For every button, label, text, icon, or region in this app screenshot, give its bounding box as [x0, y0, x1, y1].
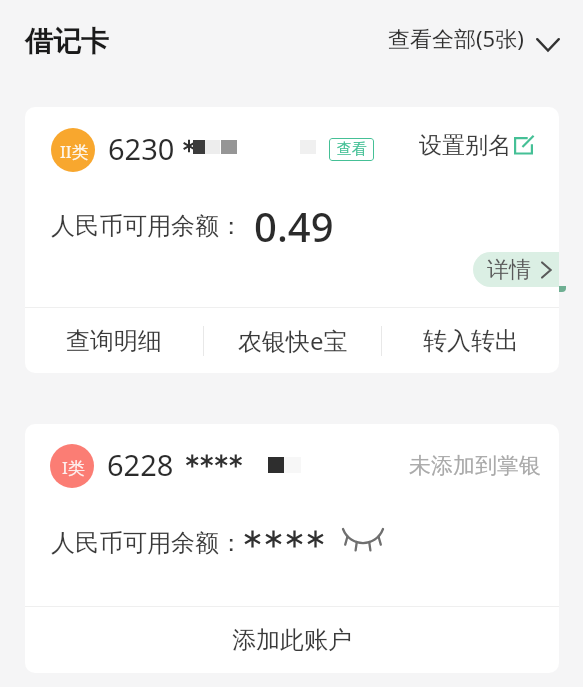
- button[interactable]: 设置别名: [419, 131, 534, 160]
- button[interactable]: 查看全部(5张): [388, 23, 560, 53]
- staticText: 详情: [487, 256, 531, 284]
- staticText: 6228: [107, 445, 174, 484]
- staticText: 6230: [108, 129, 175, 168]
- button[interactable]: 查看: [329, 138, 374, 161]
- button[interactable]: 农银快e宝: [204, 308, 381, 373]
- staticText: 农银快e宝: [238, 324, 348, 357]
- staticText: 借记卡: [25, 24, 109, 59]
- staticText: 转入转出: [423, 326, 519, 356]
- staticText: 未添加到掌银: [409, 452, 541, 480]
- staticText: II类: [60, 140, 89, 163]
- button[interactable]: Show balance: [338, 527, 388, 553]
- staticText: 查看: [337, 140, 367, 159]
- staticText: 设置别名: [419, 131, 511, 160]
- button[interactable]: 详情: [473, 252, 559, 287]
- staticText: 人民币可用余额：: [51, 528, 243, 558]
- staticText: 添加此账户: [232, 625, 352, 655]
- button[interactable]: 查询明细: [25, 308, 203, 373]
- staticText: 查看全部(5张): [388, 23, 524, 53]
- staticText: 人民币可用余额：: [51, 211, 243, 241]
- button[interactable]: 添加此账户: [25, 607, 559, 673]
- button[interactable]: 转入转出: [382, 308, 559, 373]
- staticText: I类: [62, 456, 85, 479]
- staticText: 查询明细: [66, 326, 162, 356]
- staticText: 0.49: [254, 199, 334, 253]
